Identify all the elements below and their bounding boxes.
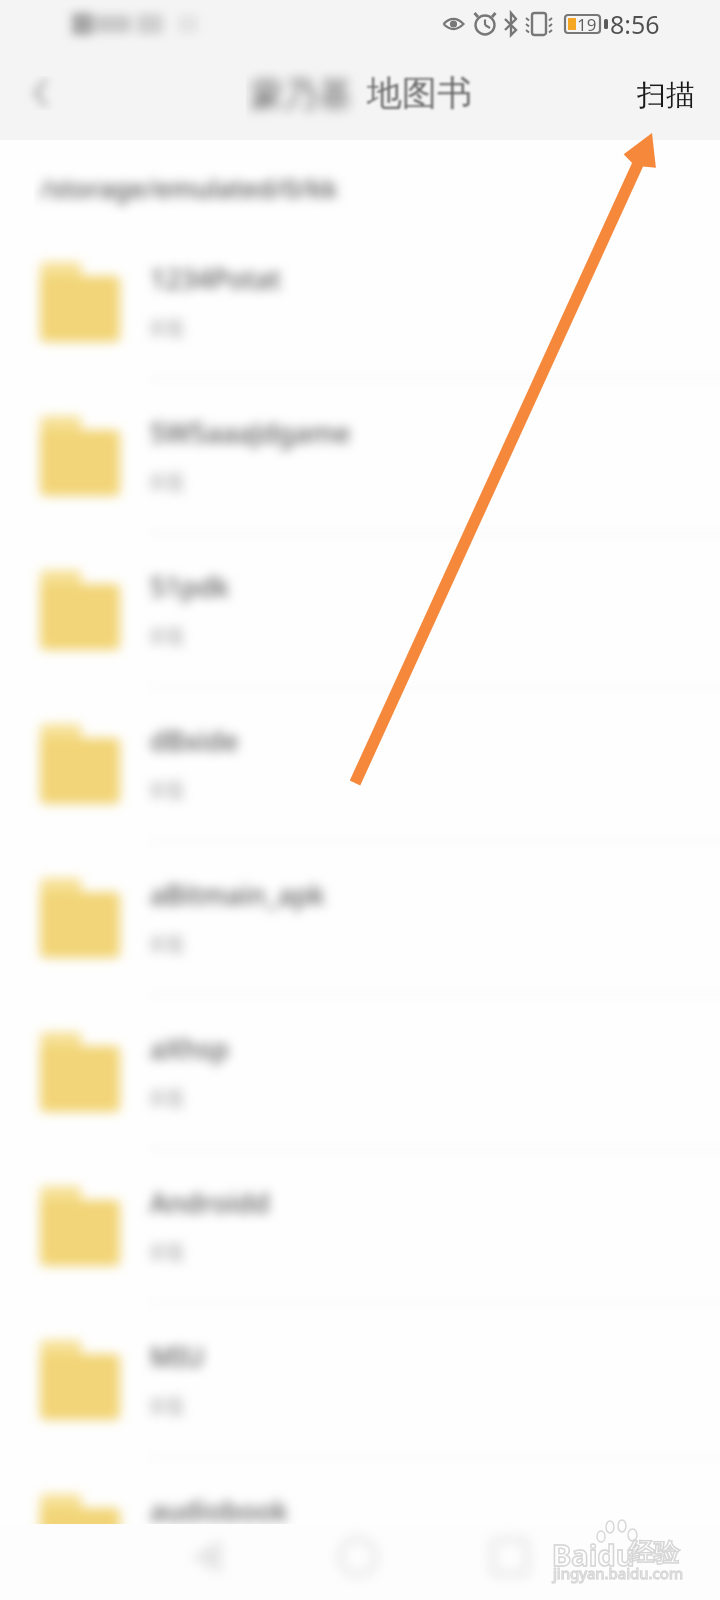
button[interactable]: Recent apps — [468, 1524, 552, 1600]
staticText: audiobook — [150, 1492, 570, 1529]
button[interactable]: audiobook — [0, 1458, 720, 1600]
button[interactable]: Back — [165, 1524, 249, 1600]
staticText: aBitmain_apk — [150, 876, 570, 913]
button[interactable]: Androidd — [0, 1150, 720, 1304]
staticText: 8项 — [150, 774, 185, 804]
staticText: 5W5aaaJdgame — [150, 414, 570, 451]
staticText: 8项 — [150, 312, 185, 342]
staticText: 8项 — [150, 1236, 185, 1266]
button[interactable]: 5W5aaaJdgame — [0, 380, 720, 534]
staticText: Baidu — [552, 1535, 635, 1574]
staticText: Androidd — [150, 1184, 570, 1221]
staticText: jingyan.baidu.com — [553, 1563, 683, 1583]
staticText: 19 — [577, 13, 597, 36]
staticText: 8项 — [150, 620, 185, 650]
staticText: aXhsp — [150, 1030, 570, 1067]
staticText: 8项 — [150, 466, 185, 496]
staticText: 8项 — [150, 1082, 185, 1112]
staticText: 1234Potat — [150, 260, 570, 297]
staticText: 8:56 — [610, 7, 660, 41]
button[interactable]: MIU — [0, 1304, 720, 1458]
staticText: /storage/emulated/0/kk — [40, 170, 338, 205]
staticText: 蒙乃基 — [250, 73, 352, 116]
staticText: 扫描 — [637, 77, 695, 114]
staticText: 地图书 — [367, 71, 472, 115]
staticText: 经验 — [629, 1537, 679, 1568]
staticText: 8项 — [150, 1390, 185, 1420]
staticText: MIU — [150, 1338, 570, 1375]
button[interactable]: 51pdk — [0, 534, 720, 688]
staticText: dBxide — [150, 722, 570, 759]
staticText: 51pdk — [150, 568, 570, 605]
button[interactable]: 扫描 — [616, 61, 712, 131]
button[interactable]: Back — [24, 76, 58, 110]
button[interactable]: aXhsp — [0, 996, 720, 1150]
button[interactable]: aBitmain_apk — [0, 842, 720, 996]
staticText: 8项 — [150, 928, 185, 958]
button[interactable]: 1234Potat — [0, 226, 720, 380]
button[interactable]: dBxide — [0, 688, 720, 842]
